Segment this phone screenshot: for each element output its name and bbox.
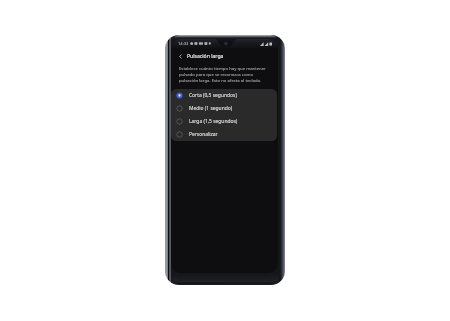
staticText: Personalizar — [189, 131, 218, 138]
staticText: Pulsación larga — [187, 53, 224, 60]
staticText: Medio (1 segundo) — [189, 105, 233, 112]
button[interactable]: Personalizar — [171, 128, 277, 141]
staticText: Larga (1,5 segundos) — [189, 118, 238, 125]
button[interactable]: Atrás — [176, 52, 185, 61]
button[interactable]: Corta (0,5 segundos) — [171, 89, 277, 102]
staticText: 14:33 — [178, 41, 189, 47]
button[interactable]: Medio (1 segundo) — [171, 102, 277, 115]
staticText: Establece cuánto tiempo hay que mantener… — [179, 65, 266, 83]
staticText: Corta (0,5 segundos) — [189, 92, 237, 99]
button[interactable]: Larga (1,5 segundos) — [171, 115, 277, 128]
